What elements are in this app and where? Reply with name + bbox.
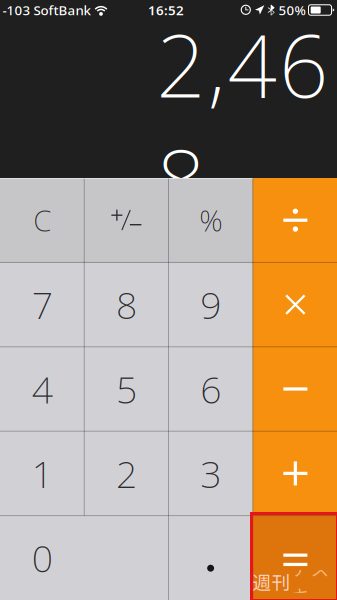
button[interactable]: Multiply: [253, 262, 337, 347]
button[interactable]: Add: [253, 431, 337, 516]
button[interactable]: [0, 262, 84, 347]
button[interactable]: [84, 431, 168, 516]
button[interactable]: Equals: [253, 516, 337, 600]
button[interactable]: [0, 178, 84, 262]
button[interactable]: [84, 262, 168, 347]
button[interactable]: [0, 347, 84, 431]
button[interactable]: [168, 178, 253, 262]
staticText: 9: [200, 280, 221, 329]
button[interactable]: [168, 262, 253, 347]
staticText: C: [33, 201, 51, 240]
button[interactable]: [0, 516, 168, 600]
staticText: 6: [200, 364, 221, 414]
staticText: 2,468: [156, 6, 328, 237]
staticText: 50%: [278, 1, 305, 19]
button[interactable]: [0, 431, 84, 516]
staticText: 1: [32, 449, 53, 498]
button[interactable]: [84, 178, 168, 262]
staticText: 7: [32, 280, 53, 329]
staticText: アスキー: [291, 554, 329, 600]
staticText: 0: [32, 533, 53, 583]
staticText: 4: [32, 364, 53, 414]
button[interactable]: Subtract: [253, 347, 337, 431]
staticText: 5: [116, 364, 137, 414]
staticText: 8: [116, 280, 137, 329]
button[interactable]: [168, 431, 253, 516]
button[interactable]: [168, 516, 253, 600]
button[interactable]: Divide: [253, 178, 337, 262]
staticText: 16:52: [148, 1, 184, 19]
staticText: -103 SoftBank: [2, 1, 90, 19]
button[interactable]: [168, 347, 253, 431]
staticText: %: [199, 201, 222, 240]
staticText: 3: [200, 449, 221, 498]
staticText: 週刊: [252, 568, 290, 595]
staticText: 2: [116, 449, 137, 498]
button[interactable]: [84, 347, 168, 431]
